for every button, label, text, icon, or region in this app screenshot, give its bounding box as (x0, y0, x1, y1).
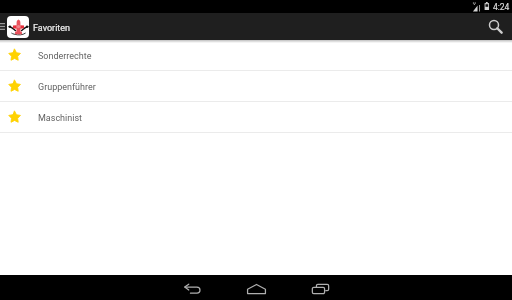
button[interactable]: Sonderrechte (0, 40, 512, 70)
button[interactable]: Recent apps (295, 275, 345, 300)
staticText: Sonderrechte (38, 51, 92, 62)
button[interactable]: Maschinist (0, 102, 512, 132)
staticText: Maschinist (38, 113, 83, 124)
button[interactable]: Search (480, 13, 512, 40)
button[interactable]: Gruppenführer (0, 71, 512, 101)
staticText: Gruppenführer (38, 82, 96, 93)
staticText: Favoriten (33, 23, 71, 34)
button[interactable]: Back (167, 275, 217, 300)
button[interactable]: Open navigation drawer (0, 13, 7, 40)
button[interactable]: Home (231, 275, 281, 300)
staticText: 4:24 (493, 2, 510, 12)
